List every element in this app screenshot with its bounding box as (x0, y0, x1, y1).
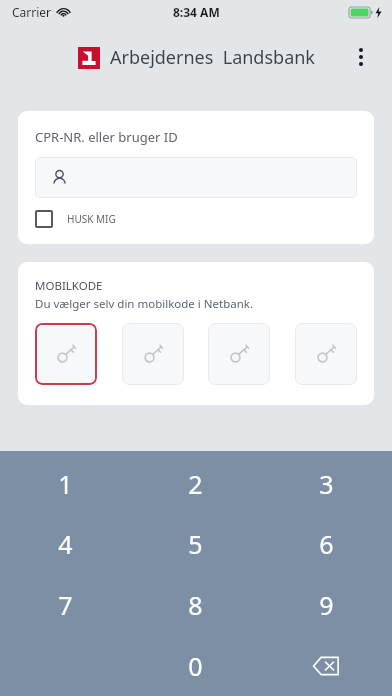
button[interactable]: 0 (130, 635, 261, 696)
staticText: 5 (188, 527, 203, 561)
button[interactable]: 8 (130, 574, 261, 635)
button[interactable]: Backspace (261, 635, 392, 696)
staticText: HUSK MIG (67, 212, 116, 226)
staticText: 7 (58, 588, 73, 622)
staticText: 3 (319, 467, 334, 501)
button[interactable]: Mobilkode digit (35, 323, 97, 385)
button[interactable]: 9 (261, 574, 392, 635)
button[interactable]: 5 (130, 514, 261, 574)
staticText: Arbejdernes Landsbank (110, 45, 315, 70)
staticText: 0 (188, 649, 203, 683)
staticText: Carrier (12, 4, 52, 20)
staticText: 8 (188, 588, 203, 622)
button[interactable]: 7 (0, 574, 130, 635)
staticText: 4 (58, 527, 73, 561)
button[interactable]: 4 (0, 514, 130, 574)
staticText: 1 (58, 467, 73, 501)
button[interactable]: 1 (0, 454, 130, 514)
staticText: 9 (319, 588, 334, 622)
staticText: Du vælger selv din mobilkode i Netbank. (35, 296, 254, 312)
staticText: CPR-NR. eller bruger ID (35, 128, 178, 146)
button[interactable]: 6 (261, 514, 392, 574)
button[interactable]: Mobilkode digit (208, 323, 270, 385)
button[interactable] (35, 157, 357, 198)
button[interactable]: 3 (261, 454, 392, 514)
staticText: MOBILKODE (35, 278, 103, 294)
button[interactable]: More options (338, 34, 384, 80)
button[interactable]: 2 (130, 454, 261, 514)
button[interactable]: Mobilkode digit (295, 323, 357, 385)
staticText: 8:34 AM (173, 4, 220, 20)
button[interactable]: HUSK MIG (35, 210, 116, 228)
staticText: 6 (319, 527, 334, 561)
staticText: 2 (188, 467, 203, 501)
button[interactable]: Mobilkode digit (122, 323, 184, 385)
